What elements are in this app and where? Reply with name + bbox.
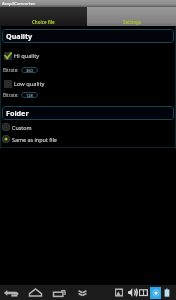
button[interactable]: 360 xyxy=(21,67,38,73)
staticText: Custom xyxy=(12,124,32,131)
button[interactable]: Choice file xyxy=(0,7,87,26)
staticText: Amp3Converter xyxy=(2,1,36,7)
button[interactable]: Settings xyxy=(87,7,176,26)
button[interactable]: 128 xyxy=(21,92,38,98)
staticText: Low quality xyxy=(14,80,45,88)
button[interactable]: Notifications xyxy=(139,285,148,300)
button[interactable]: Low quality xyxy=(4,80,176,88)
staticText: Settings xyxy=(123,19,141,25)
staticText: 128 xyxy=(26,93,33,98)
button[interactable]: Recent apps xyxy=(53,285,66,300)
button[interactable]: Home xyxy=(29,285,42,300)
button[interactable]: Hi quality xyxy=(4,52,176,60)
button[interactable]: Folder xyxy=(2,106,174,120)
button[interactable]: Quality xyxy=(2,29,174,43)
button[interactable]: Screen capture xyxy=(150,287,161,299)
staticText: Bitrate: xyxy=(3,67,19,73)
staticText: Hi quality xyxy=(14,52,40,60)
button[interactable]: Hide keyboard xyxy=(77,285,88,300)
button[interactable]: Same as input file xyxy=(2,135,176,143)
button[interactable]: Screenshot xyxy=(115,285,123,300)
staticText: Choice file xyxy=(32,19,55,25)
button[interactable]: Volume xyxy=(128,285,137,300)
staticText: Same as input file xyxy=(12,136,57,143)
button[interactable]: Custom xyxy=(2,123,176,131)
staticText: Quality xyxy=(6,31,33,41)
button[interactable]: Back xyxy=(3,285,19,300)
button[interactable]: Battery xyxy=(164,285,170,300)
staticText: 360 xyxy=(26,68,33,73)
staticText: Bitrate: xyxy=(3,92,19,98)
staticText: Folder xyxy=(6,108,29,118)
